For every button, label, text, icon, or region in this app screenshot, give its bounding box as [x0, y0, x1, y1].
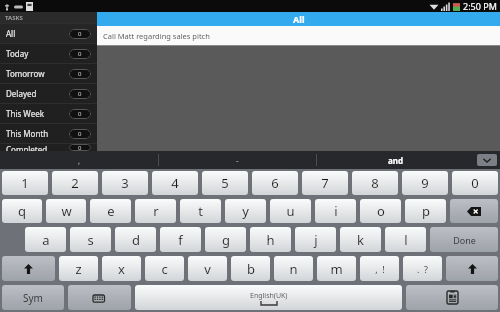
button[interactable]: English(UK)	[135, 285, 402, 310]
staticText: 4	[171, 174, 179, 192]
staticText: Call Matt regarding sales pitch	[103, 31, 210, 41]
button[interactable]: t	[180, 199, 221, 223]
staticText: w	[61, 202, 72, 220]
staticText: 0	[471, 174, 479, 192]
button[interactable]: 2	[52, 171, 98, 195]
staticText: d	[132, 231, 140, 249]
button[interactable]: k	[340, 227, 381, 252]
staticText: t	[198, 202, 203, 220]
staticText: Tomorrow	[6, 68, 45, 79]
button[interactable]: , !	[360, 256, 399, 281]
button[interactable]: r	[135, 199, 176, 223]
staticText: 6	[271, 174, 279, 192]
button[interactable]: u	[270, 199, 311, 223]
button[interactable]: Clipboard	[406, 285, 498, 310]
button[interactable]: b	[231, 256, 270, 281]
button[interactable]: h	[250, 227, 291, 252]
staticText: Done	[453, 234, 476, 246]
staticText: k	[357, 231, 364, 249]
button[interactable]: 8	[352, 171, 398, 195]
button[interactable]: c	[145, 256, 184, 281]
staticText: 0	[78, 90, 82, 98]
button[interactable]: All	[97, 12, 500, 26]
staticText: b	[247, 260, 255, 278]
button[interactable]: j	[295, 227, 336, 252]
button[interactable]: 4	[152, 171, 198, 195]
button[interactable]: e	[90, 199, 131, 223]
button[interactable]: y	[225, 199, 266, 223]
staticText: x	[118, 260, 125, 278]
button[interactable]: . ?	[403, 256, 442, 281]
staticText: 3	[121, 174, 129, 192]
button[interactable]: 0	[452, 171, 498, 195]
button[interactable]: Shift	[2, 256, 55, 281]
button[interactable]: Done	[430, 227, 498, 252]
button[interactable]: 6	[252, 171, 298, 195]
staticText: 2:50 PM	[463, 0, 497, 12]
button[interactable]: Shift	[446, 256, 498, 281]
staticText: 1	[21, 174, 29, 192]
staticText: h	[266, 231, 275, 249]
button[interactable]: Expand suggestions	[477, 154, 497, 166]
staticText: p	[422, 202, 430, 220]
staticText: u	[286, 202, 295, 220]
button[interactable]: This Week	[0, 104, 97, 123]
button[interactable]: 1	[2, 171, 48, 195]
button[interactable]: o	[360, 199, 401, 223]
staticText: This Month	[6, 128, 49, 139]
staticText: 7	[321, 174, 329, 192]
staticText: y	[242, 202, 249, 220]
button[interactable]: p	[405, 199, 446, 223]
button[interactable]: Completed	[0, 144, 97, 151]
button[interactable]: 7	[302, 171, 348, 195]
staticText: 5	[221, 174, 229, 192]
button[interactable]: z	[59, 256, 98, 281]
staticText: 9	[421, 174, 429, 192]
staticText: c	[161, 260, 168, 278]
staticText: ,	[78, 155, 81, 166]
staticText: -	[236, 155, 239, 166]
button[interactable]: and	[317, 151, 474, 169]
button[interactable]: m	[317, 256, 356, 281]
staticText: All	[293, 13, 305, 25]
button[interactable]: i	[315, 199, 356, 223]
staticText: 0	[78, 70, 82, 78]
button[interactable]: x	[102, 256, 141, 281]
button[interactable]: Today	[0, 44, 97, 63]
staticText: 0	[78, 30, 82, 38]
staticText: , !	[375, 263, 385, 275]
button[interactable]: f	[160, 227, 201, 252]
button[interactable]: q	[2, 199, 42, 223]
staticText: TASKS	[5, 14, 23, 22]
button[interactable]: Sym	[2, 285, 64, 310]
button[interactable]: Backspace	[450, 199, 498, 223]
button[interactable]: This Month	[0, 124, 97, 143]
button[interactable]: g	[205, 227, 246, 252]
staticText: f	[178, 231, 183, 249]
button[interactable]: v	[188, 256, 227, 281]
button[interactable]: Call Matt regarding sales pitch	[97, 26, 500, 45]
button[interactable]: s	[70, 227, 111, 252]
button[interactable]: a	[25, 227, 66, 252]
button[interactable]: n	[274, 256, 313, 281]
button[interactable]: All	[0, 24, 97, 43]
staticText: j	[314, 231, 318, 249]
button[interactable]: l	[385, 227, 426, 252]
staticText: . ?	[417, 263, 428, 275]
button[interactable]: Tomorrow	[0, 64, 97, 83]
staticText: and	[388, 155, 404, 166]
staticText: z	[75, 260, 82, 278]
button[interactable]: 3	[102, 171, 148, 195]
button[interactable]: Keyboard settings	[68, 285, 131, 310]
button[interactable]: Delayed	[0, 84, 97, 103]
button[interactable]: 9	[402, 171, 448, 195]
button[interactable]: w	[46, 199, 86, 223]
staticText: 0	[78, 144, 82, 151]
staticText: 0	[78, 110, 82, 118]
staticText: Today	[6, 48, 29, 59]
staticText: Completed	[6, 144, 48, 151]
button[interactable]: 5	[202, 171, 248, 195]
button[interactable]: d	[115, 227, 156, 252]
